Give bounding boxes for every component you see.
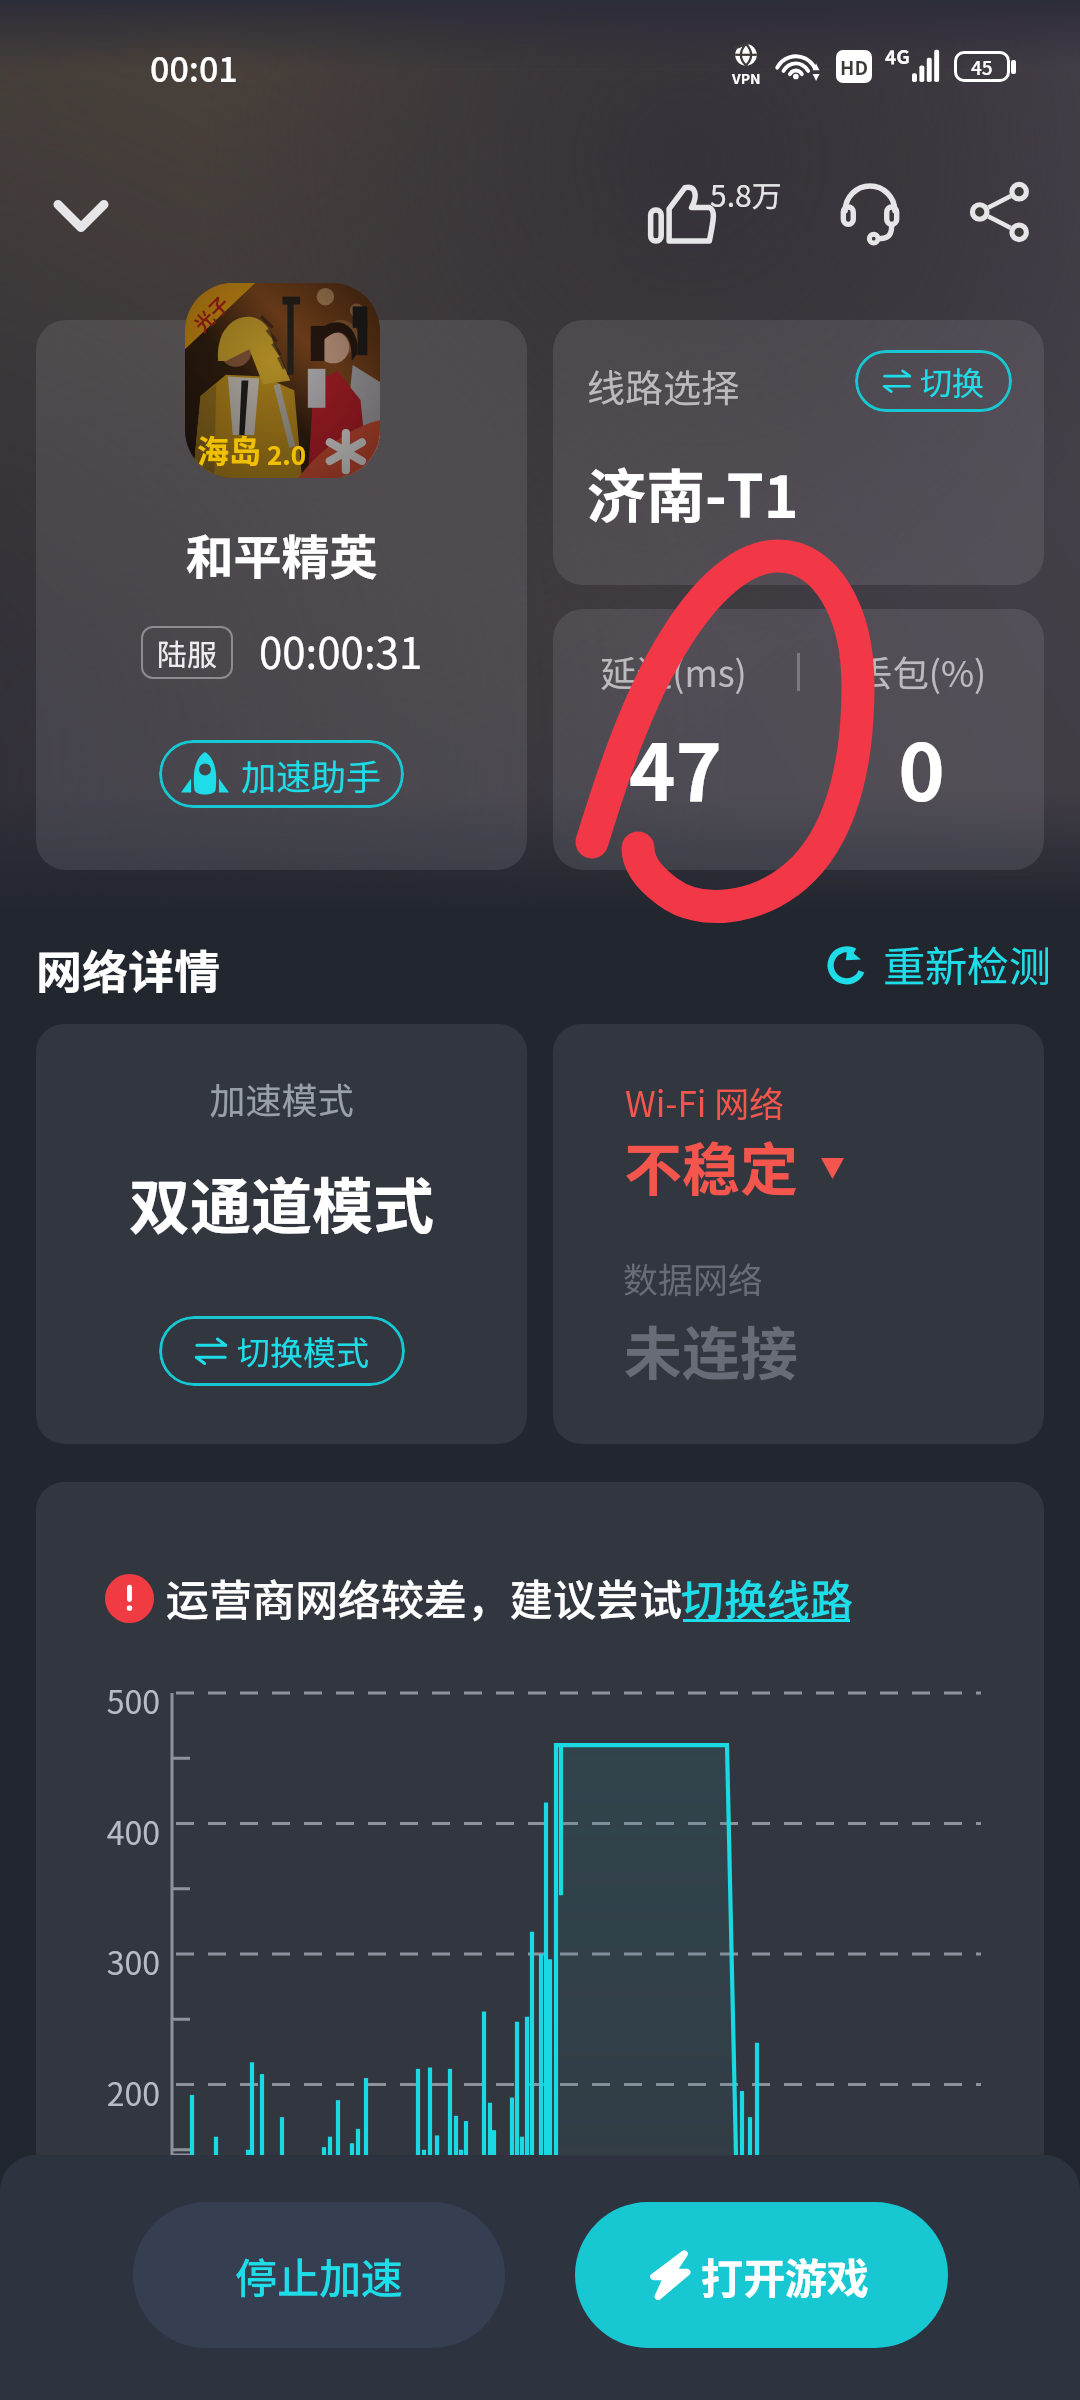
staticText: 丢包(%)	[799, 645, 1044, 697]
staticText: 00:01	[150, 43, 238, 92]
button[interactable]: 打开游戏	[575, 2202, 948, 2348]
staticText: 切换线路	[681, 1566, 853, 1628]
staticText: 和平精英	[36, 519, 527, 589]
staticText: 延迟(ms)	[551, 645, 796, 697]
staticText: 停止加速	[235, 2245, 404, 2306]
staticText: 切换	[920, 358, 985, 404]
staticText: 500	[60, 1677, 160, 1723]
button[interactable]	[36, 1024, 527, 1444]
button[interactable]: 重新检测	[829, 934, 1057, 992]
staticText: 济南-T1	[587, 450, 799, 535]
staticText: 重新检测	[883, 933, 1052, 991]
staticText: 0	[799, 709, 1044, 823]
staticText: 切换模式	[237, 1327, 369, 1375]
button[interactable]: Share	[954, 166, 1046, 258]
staticText: Wi-Fi 网络	[625, 1076, 785, 1127]
staticText: 4G	[885, 42, 910, 70]
button[interactable]: Collapse	[40, 170, 122, 262]
button[interactable]	[553, 1024, 1044, 1444]
button[interactable]: 切换	[855, 350, 1012, 412]
staticText: 47	[553, 709, 798, 823]
staticText: 线路选择	[587, 358, 740, 413]
button[interactable]: 切换线路	[681, 1566, 853, 1628]
staticText: 陆服	[157, 631, 217, 674]
staticText: 双通道模式	[36, 1158, 527, 1246]
staticText: 45	[971, 53, 993, 81]
button[interactable]: 切换模式	[159, 1316, 405, 1386]
staticText: 光子	[187, 289, 235, 338]
button[interactable]	[553, 609, 1044, 870]
staticText: 2.0	[267, 435, 307, 473]
staticText: 打开游戏	[701, 2245, 870, 2306]
staticText: 加速助手	[241, 749, 382, 800]
staticText: 数据网络	[623, 1252, 764, 1303]
staticText: 运营商网络较差，建议尝试	[166, 1566, 682, 1628]
staticText: 未连接	[624, 1308, 799, 1392]
button[interactable]: Customer service	[824, 166, 916, 258]
button[interactable]: 停止加速	[133, 2202, 505, 2348]
staticText: 不稳定	[624, 1124, 799, 1208]
button[interactable]	[553, 320, 1044, 585]
staticText: 加速模式	[36, 1072, 527, 1124]
button[interactable]	[36, 320, 527, 870]
staticText: VPN	[732, 68, 761, 88]
staticText: 5.8万	[710, 172, 782, 215]
staticText: 海岛	[197, 426, 262, 472]
button[interactable]: Like 5.8万	[636, 166, 796, 262]
button[interactable]: 加速助手	[159, 740, 404, 808]
staticText: 300	[60, 1938, 160, 1984]
staticText: 00:00:31	[259, 620, 423, 681]
staticText: 400	[60, 1808, 160, 1854]
staticText: 200	[60, 2069, 160, 2115]
staticText: 网络详情	[36, 936, 220, 1003]
staticText: HD	[840, 53, 868, 81]
